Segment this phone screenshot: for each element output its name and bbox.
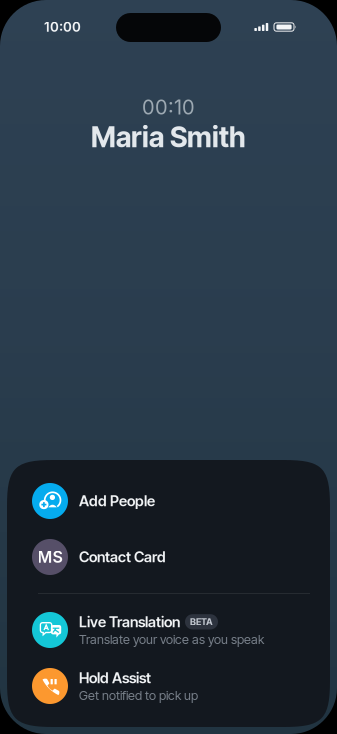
staticText: BETA	[190, 616, 213, 627]
staticText: Get notified to pick up	[79, 688, 198, 703]
button[interactable]: Hold Assist	[7, 658, 330, 714]
staticText: Translate your voice as you speak	[79, 632, 264, 647]
staticText: Hold Assist	[79, 669, 151, 687]
button[interactable]: Add People	[7, 473, 330, 529]
staticText: Add People	[79, 492, 155, 510]
staticText: Maria Smith	[91, 120, 246, 154]
staticText: Live Translation	[79, 613, 180, 631]
staticText: 00:10	[142, 95, 195, 119]
button[interactable]: Live Translation	[7, 602, 330, 658]
button[interactable]: MS	[7, 529, 330, 585]
staticText: MS	[37, 547, 62, 567]
staticText: 10:00	[44, 19, 81, 35]
staticText: Contact Card	[79, 548, 166, 566]
